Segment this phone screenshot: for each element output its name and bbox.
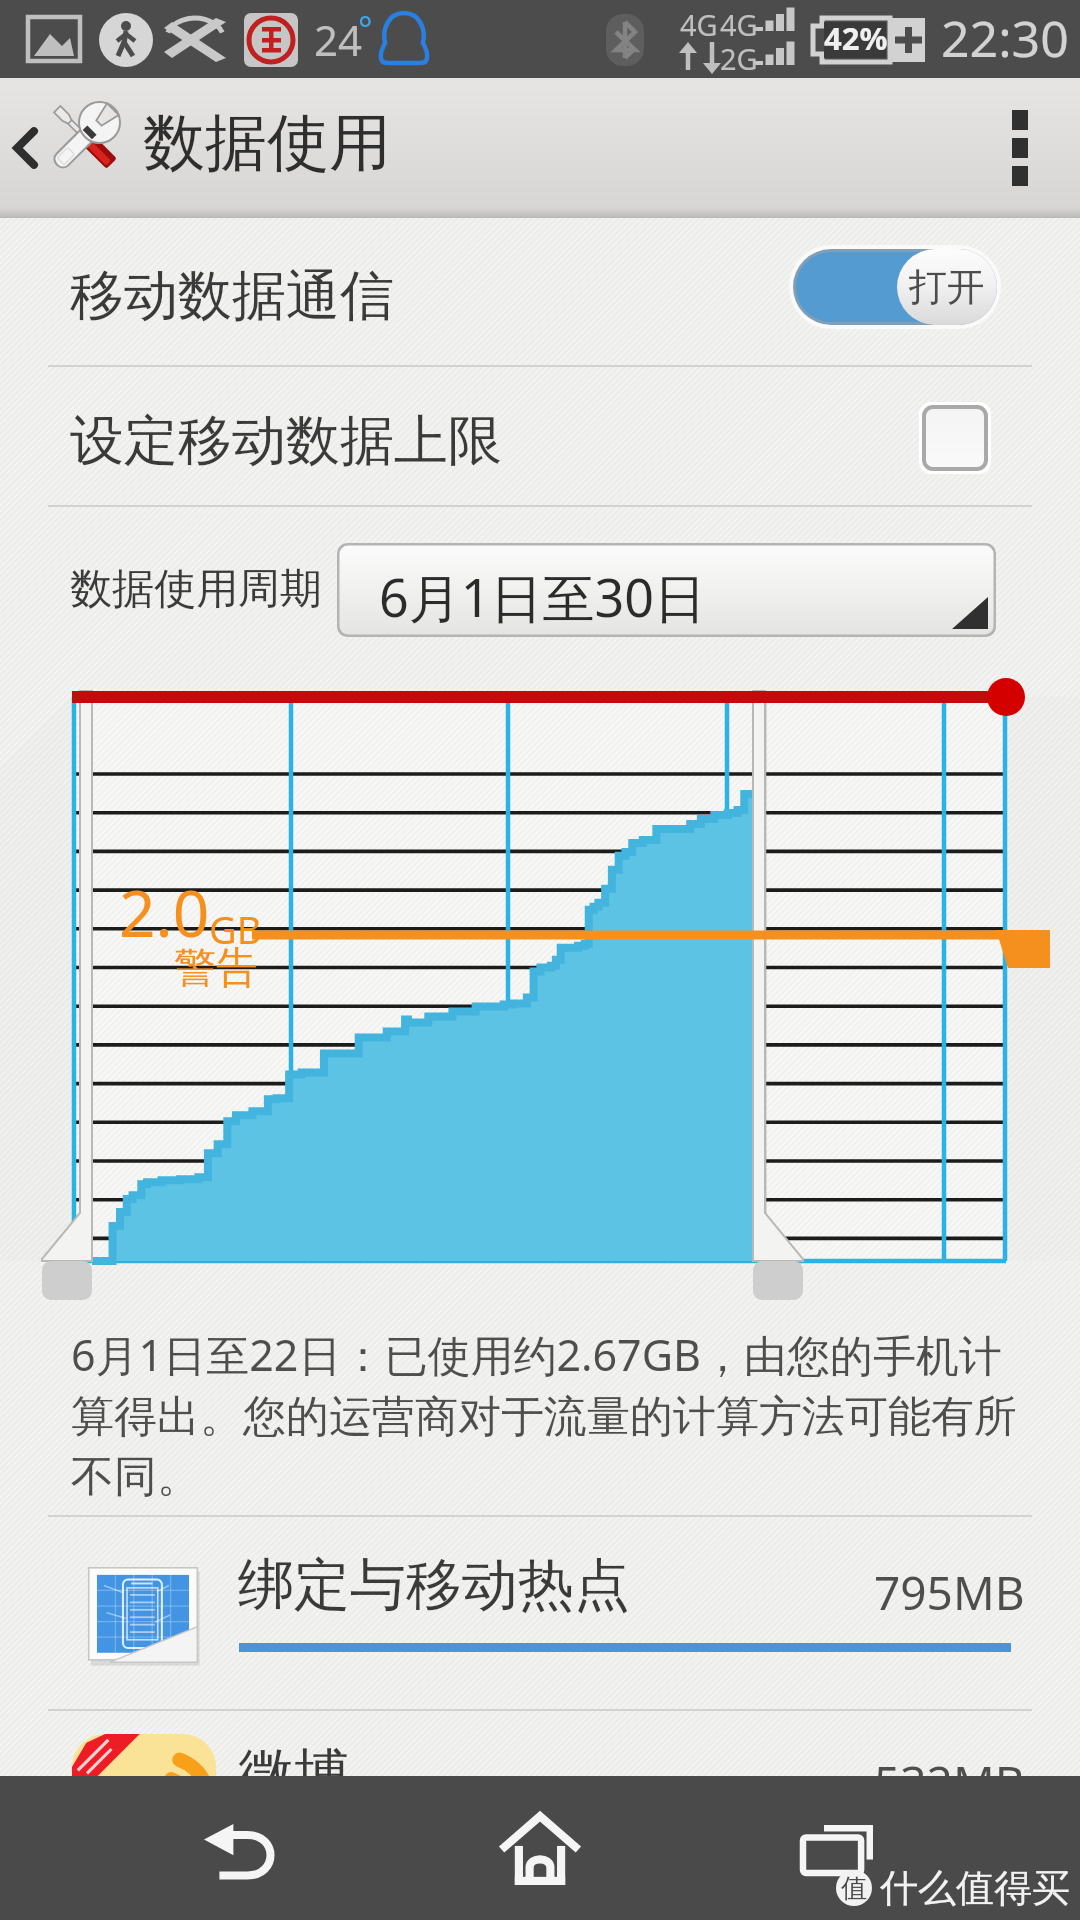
staticText: 微博 xyxy=(238,1740,350,1811)
staticText: GB xyxy=(209,903,262,955)
staticText: 警告 xyxy=(174,942,258,995)
button[interactable]: Home xyxy=(400,1776,680,1920)
button[interactable]: Recent apps xyxy=(700,1776,980,1920)
staticText: 什么值得买 xyxy=(880,1864,1070,1912)
button[interactable]: Mobile data, on xyxy=(793,249,997,325)
staticText: 移动数据通信 xyxy=(70,262,394,330)
button[interactable]: Back xyxy=(100,1776,380,1920)
staticText: 数据使用周期 xyxy=(70,563,322,616)
staticText: 2.0 xyxy=(119,869,210,956)
staticText: 打开 xyxy=(909,263,985,311)
staticText: 532MB xyxy=(874,1751,1025,1814)
button[interactable]: 绑定与移动热点 xyxy=(0,1517,1080,1709)
button[interactable]: Navigate up xyxy=(0,78,134,218)
staticText: 6月1日至22日：已使用约2.67GB，由您的手机计算得出。您的运营商对于流量的… xyxy=(71,1325,1023,1504)
staticText: 设定移动数据上限 xyxy=(70,407,502,475)
staticText: 绑定与移动热点 xyxy=(238,1550,630,1621)
staticText: 2G xyxy=(720,39,758,78)
staticText: ° xyxy=(358,6,373,52)
button[interactable]: 微博 xyxy=(0,1711,1080,1901)
button[interactable]: More options xyxy=(960,78,1080,218)
button[interactable]: 6月1日至30日 xyxy=(337,543,996,637)
staticText: 4G xyxy=(720,5,758,44)
staticText: 24 xyxy=(314,11,363,68)
staticText: 数据使用 xyxy=(143,104,391,182)
staticText: 值 xyxy=(841,1872,867,1905)
staticText: 795MB xyxy=(874,1561,1025,1624)
staticText: 22:30 xyxy=(941,4,1069,72)
staticText: 42% xyxy=(824,17,888,59)
button[interactable]: 设定移动数据上限 xyxy=(0,367,1080,505)
staticText: 4G xyxy=(680,5,718,44)
staticText: 6月1日至30日 xyxy=(379,561,706,632)
button[interactable]: 移动数据通信 xyxy=(0,218,1080,365)
